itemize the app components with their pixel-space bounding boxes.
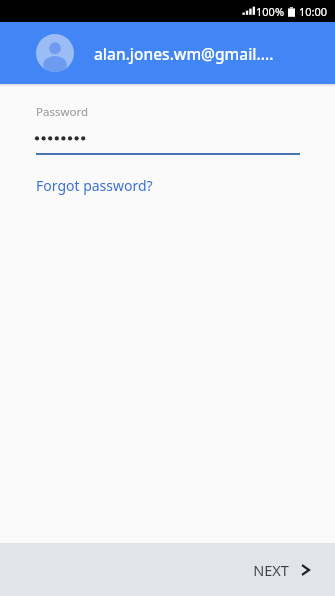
button[interactable]: NEXT xyxy=(253,560,311,580)
button[interactable]: Account avatar xyxy=(0,22,335,84)
other: Account avatar xyxy=(36,34,74,72)
staticText: NEXT xyxy=(253,560,289,580)
staticText: Forgot password? xyxy=(36,176,153,195)
staticText: alan.jones.wm@gmail.... xyxy=(94,43,274,64)
staticText: 10:00 xyxy=(299,4,328,19)
button[interactable]: Forgot password? xyxy=(36,176,153,195)
button[interactable] xyxy=(0,130,335,148)
staticText: 100% xyxy=(256,4,285,19)
staticText: Password xyxy=(36,104,89,120)
